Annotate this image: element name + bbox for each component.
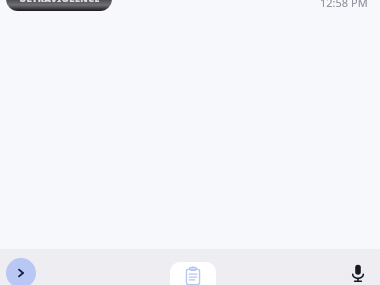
button[interactable]: Voice input xyxy=(344,259,372,285)
staticText: ULTRAVIOLENCE xyxy=(19,0,100,4)
button[interactable]: Clipboard xyxy=(170,262,216,285)
button[interactable]: ULTRAVIOLENCE xyxy=(6,0,112,11)
staticText: 12:58 PM xyxy=(320,0,368,10)
button[interactable]: Expand xyxy=(6,258,36,285)
